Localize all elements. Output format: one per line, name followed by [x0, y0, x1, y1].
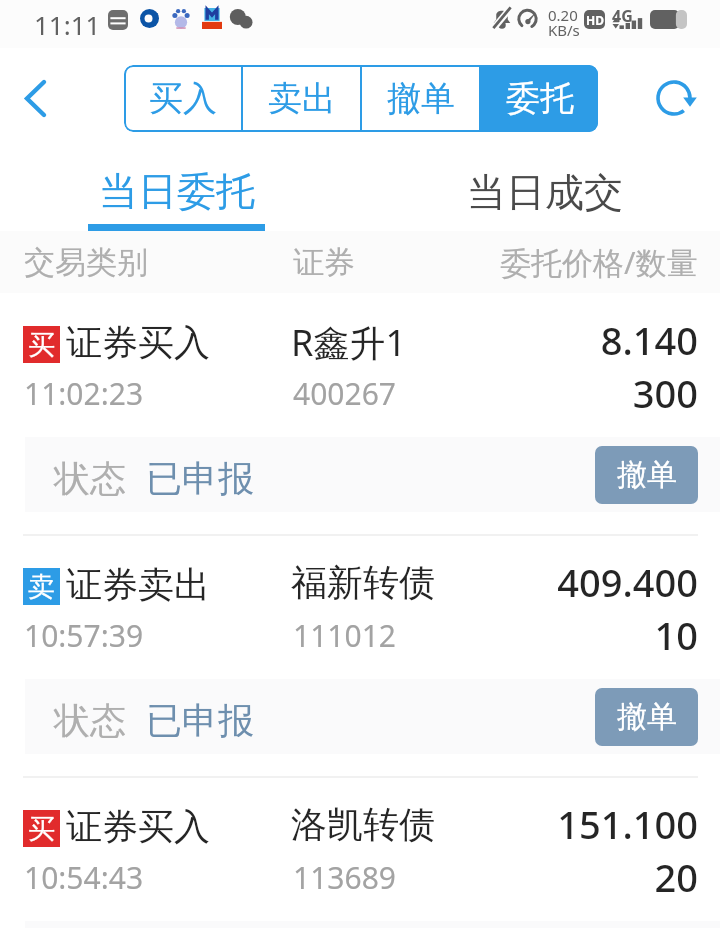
staticText: 卖: [28, 570, 55, 604]
staticText: 20: [654, 851, 698, 903]
staticText: 交易类别: [24, 243, 148, 282]
staticText: 买: [28, 812, 55, 846]
button[interactable]: 卖出: [243, 65, 360, 132]
staticText: 8.140: [600, 314, 698, 366]
staticText: 证券买入: [66, 320, 210, 365]
staticText: 151.100: [557, 798, 698, 850]
staticText: KB/s: [548, 20, 580, 40]
button[interactable]: 撤单: [595, 446, 698, 504]
staticText: 撤单: [387, 77, 455, 120]
button[interactable]: 当日委托: [0, 140, 353, 231]
staticText: 300: [632, 367, 698, 419]
staticText: 福新转债: [291, 560, 435, 605]
button[interactable]: 撤单: [362, 65, 479, 132]
staticText: 111012: [293, 615, 396, 656]
staticText: 113689: [293, 857, 396, 898]
staticText: 委托价格/数量: [500, 241, 698, 283]
staticText: 当日委托: [99, 167, 255, 216]
button[interactable]: 买入: [124, 65, 241, 132]
staticText: 4G: [612, 5, 633, 27]
staticText: 409.400: [557, 556, 698, 608]
staticText: 状态: [54, 698, 126, 743]
staticText: 买入: [149, 77, 217, 120]
button[interactable]: Refresh: [630, 60, 720, 136]
button[interactable]: 撤单: [595, 688, 698, 746]
staticText: 卖出: [268, 77, 336, 120]
staticText: 10:57:39: [24, 615, 144, 656]
staticText: 买: [28, 328, 55, 362]
staticText: 11:11: [34, 7, 101, 42]
staticText: 证券: [293, 243, 355, 282]
staticText: 400267: [293, 373, 396, 414]
staticText: 证券卖出: [66, 562, 210, 607]
staticText: 10: [654, 609, 698, 661]
staticText: 证券买入: [66, 804, 210, 849]
staticText: 已申报: [146, 456, 254, 501]
staticText: 已申报: [146, 698, 254, 743]
staticText: 11:02:23: [24, 373, 144, 414]
staticText: 10:54:43: [24, 857, 144, 898]
staticText: 洛凯转债: [291, 802, 435, 847]
staticText: 委托: [506, 77, 574, 120]
button[interactable]: 委托: [481, 65, 598, 132]
button[interactable]: Back: [0, 60, 70, 136]
staticText: HD: [586, 12, 604, 28]
staticText: 状态: [54, 456, 126, 501]
staticText: 撤单: [617, 698, 677, 736]
staticText: R鑫升1: [291, 318, 406, 367]
staticText: 当日成交: [467, 168, 623, 217]
staticText: 0.20: [548, 5, 578, 25]
button[interactable]: 当日成交: [353, 140, 720, 231]
staticText: 撤单: [617, 456, 677, 494]
